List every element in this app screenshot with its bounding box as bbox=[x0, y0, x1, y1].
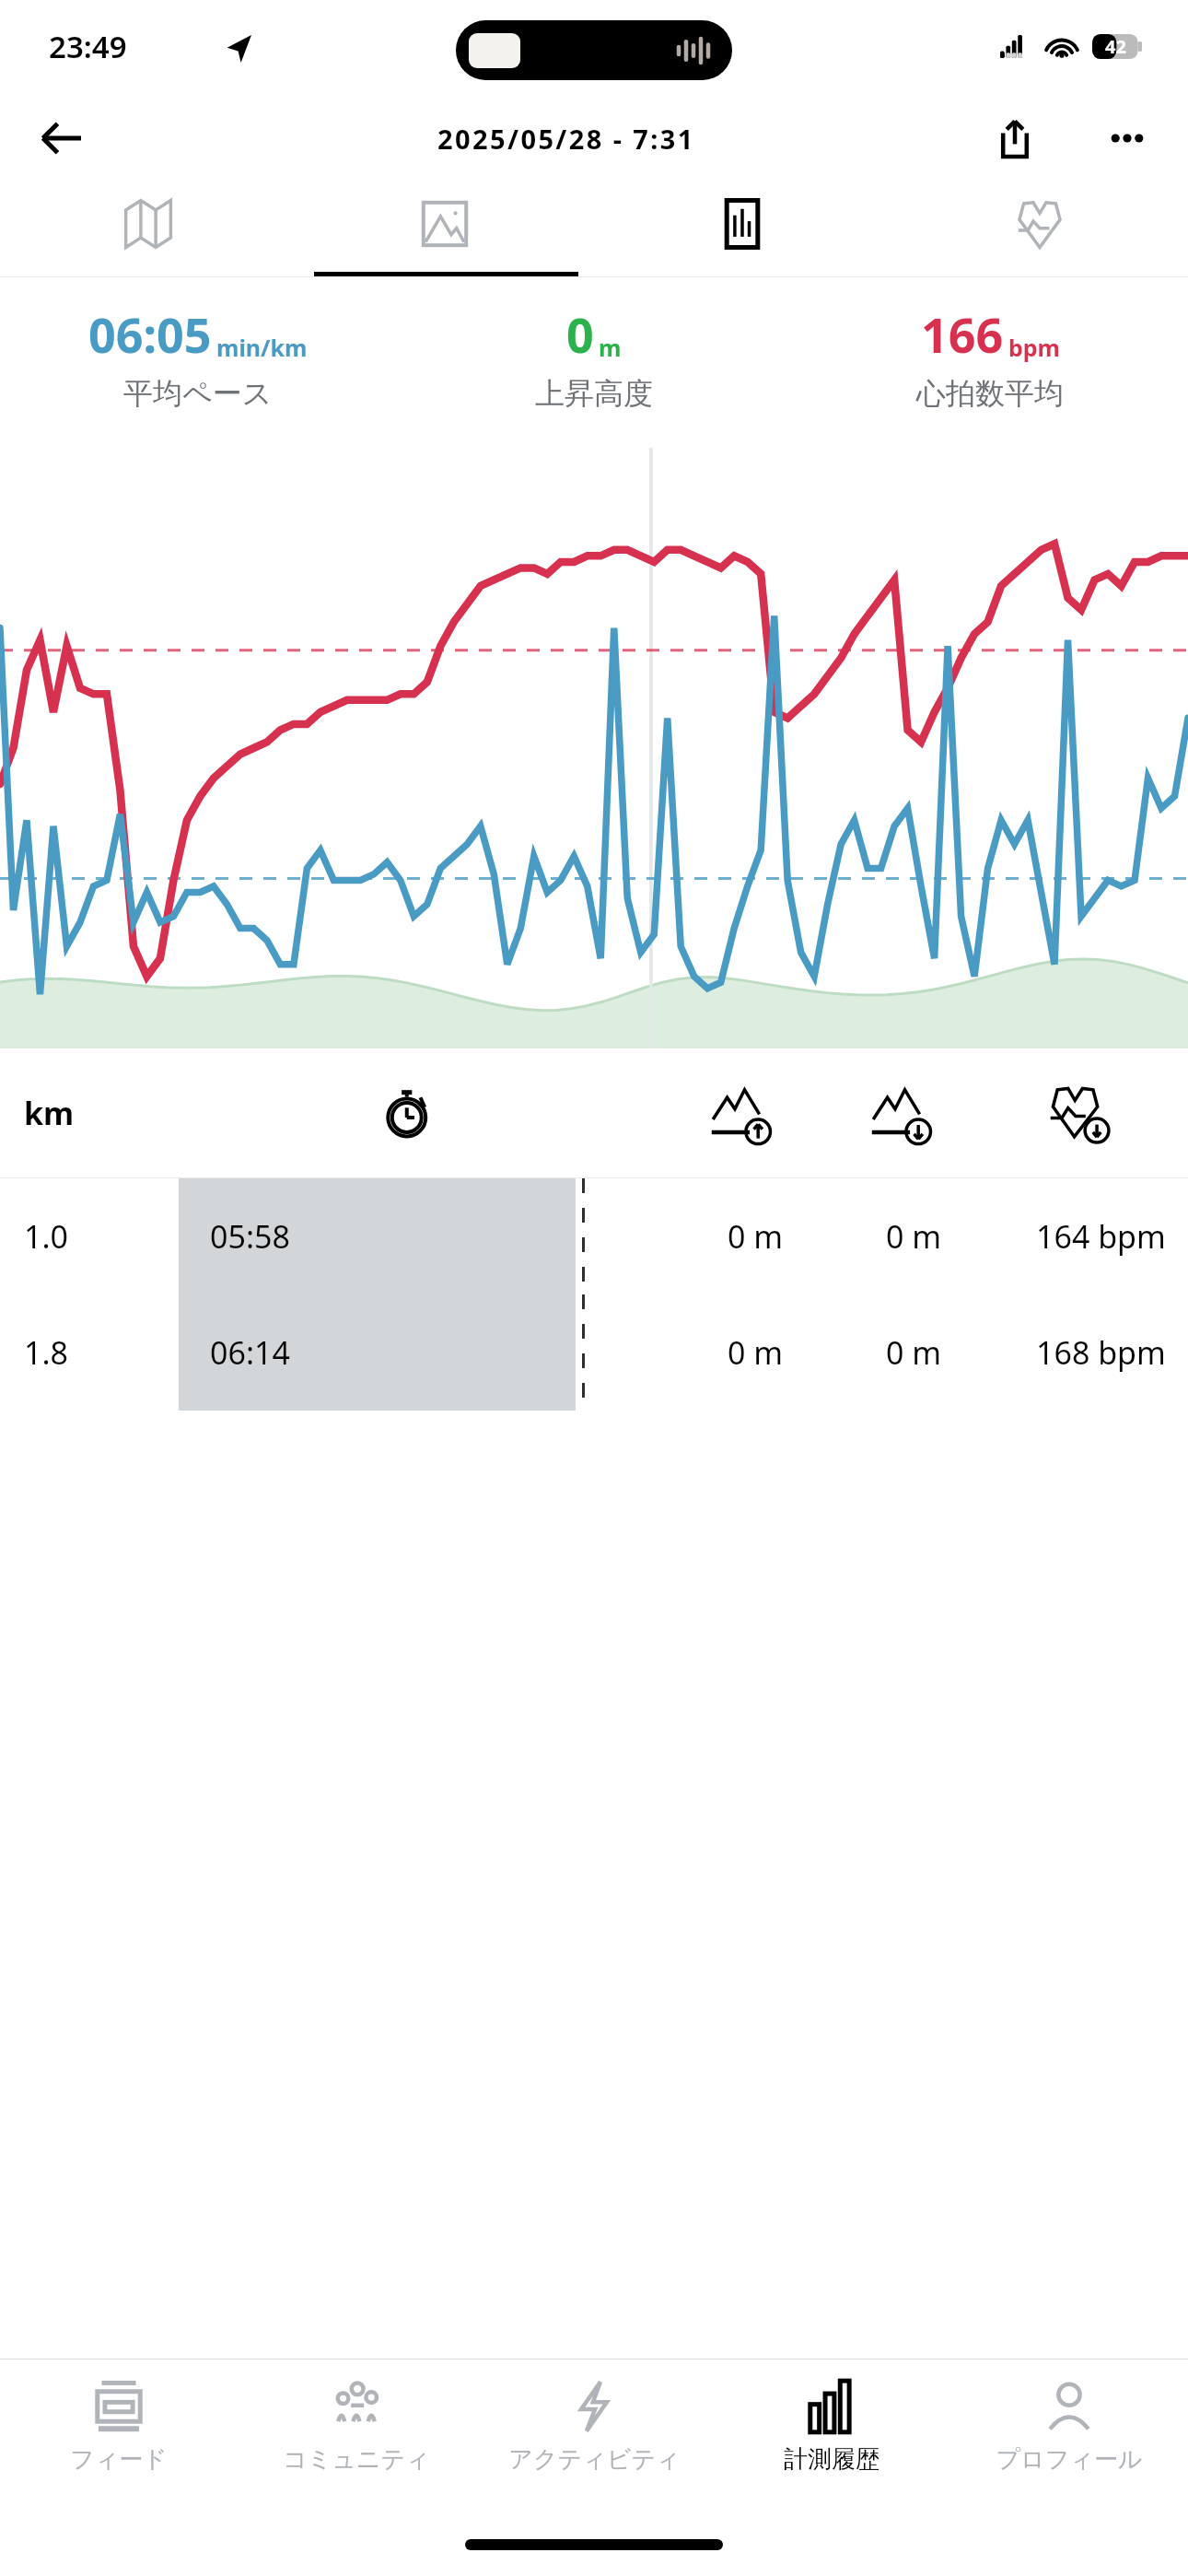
staticText: 計測履歴 bbox=[784, 2444, 879, 2475]
staticText: 0 bbox=[566, 301, 594, 367]
button[interactable]: Heart rate bbox=[891, 180, 1188, 276]
button[interactable]: プロフィール bbox=[950, 2359, 1188, 2521]
staticText: 06:14 bbox=[210, 1331, 290, 1374]
staticText: bpm bbox=[1008, 332, 1060, 363]
staticText: 2025/05/28 - 7:31 bbox=[437, 121, 695, 157]
staticText: 164 bpm bbox=[1036, 1215, 1166, 1258]
staticText: 05:58 bbox=[210, 1215, 290, 1258]
staticText: 0 m bbox=[886, 1331, 942, 1374]
staticText: コミュニティ bbox=[283, 2444, 430, 2475]
staticText: 0 m bbox=[886, 1215, 942, 1258]
button[interactable]: コミュニティ bbox=[238, 2359, 475, 2521]
button[interactable]: アクティビティ bbox=[475, 2359, 713, 2521]
staticText: 42 bbox=[1105, 34, 1126, 59]
staticText: 1.8 bbox=[24, 1331, 69, 1374]
button[interactable]: Share bbox=[982, 105, 1048, 171]
button[interactable]: More options bbox=[1094, 105, 1160, 171]
staticText: min/km bbox=[216, 332, 308, 363]
staticText: 1.0 bbox=[24, 1215, 69, 1258]
staticText: 0 m bbox=[728, 1331, 784, 1374]
staticText: フィード bbox=[70, 2444, 168, 2475]
button[interactable]: Photos bbox=[297, 180, 593, 276]
button[interactable]: 1.0 bbox=[0, 1178, 1188, 1294]
staticText: 平均ペース bbox=[123, 375, 273, 412]
button[interactable]: Back bbox=[28, 105, 94, 171]
button[interactable]: 1.8 bbox=[0, 1294, 1188, 1411]
staticText: 166 bbox=[921, 301, 1004, 367]
staticText: m bbox=[599, 332, 622, 363]
staticText: プロフィール bbox=[996, 2444, 1143, 2475]
button[interactable]: 計測履歴 bbox=[713, 2359, 950, 2521]
button[interactable]: フィード bbox=[0, 2359, 238, 2521]
staticText: アクティビティ bbox=[508, 2444, 681, 2475]
staticText: 0 m bbox=[728, 1215, 784, 1258]
staticText: 23:49 bbox=[49, 26, 127, 67]
staticText: 06:05 bbox=[88, 301, 212, 367]
button[interactable]: Charts bbox=[593, 180, 891, 276]
staticText: 168 bpm bbox=[1036, 1331, 1166, 1374]
staticText: km bbox=[24, 1092, 75, 1134]
staticText: 上昇高度 bbox=[535, 375, 653, 412]
staticText: 心拍数平均 bbox=[916, 375, 1064, 412]
button[interactable]: Map bbox=[0, 180, 297, 276]
